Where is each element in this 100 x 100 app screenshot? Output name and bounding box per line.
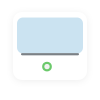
button[interactable]: Open item xyxy=(13,12,87,80)
